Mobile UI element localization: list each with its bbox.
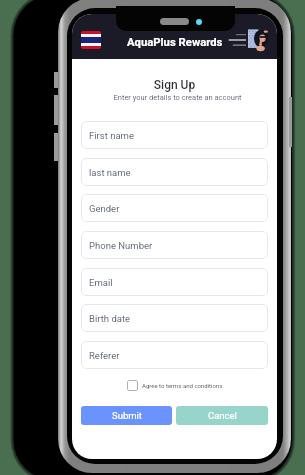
button[interactable]: Agree to terms and conditions <box>127 380 223 391</box>
staticText: Agree to terms and conditions <box>142 382 223 389</box>
button[interactable]: Change language <box>81 31 101 49</box>
staticText: Birth date <box>89 313 131 324</box>
staticText: Enter your details to create an account <box>75 93 277 102</box>
button[interactable]: First name <box>81 121 268 149</box>
button[interactable]: Submit <box>81 406 172 425</box>
staticText: Submit <box>112 410 142 421</box>
button[interactable]: Email <box>81 268 268 296</box>
button[interactable]: Phone Number <box>81 231 268 259</box>
staticText: AquaPlus Rewards <box>127 36 223 49</box>
button[interactable]: Menu <box>228 33 246 46</box>
staticText: Phone Number <box>89 240 153 251</box>
staticText: Gender <box>89 203 120 214</box>
staticText: last name <box>89 167 131 178</box>
staticText: Sign Up <box>72 78 277 92</box>
staticText: Referer <box>89 350 120 361</box>
button[interactable]: Gender <box>81 194 268 222</box>
button[interactable]: Cancel <box>176 406 268 425</box>
button[interactable]: Profile <box>248 29 268 50</box>
button[interactable]: last name <box>81 158 268 186</box>
staticText: Email <box>89 277 113 288</box>
staticText: First name <box>89 130 134 141</box>
staticText: Cancel <box>208 410 237 421</box>
button[interactable]: Referer <box>81 341 268 369</box>
button[interactable]: Birth date <box>81 304 268 332</box>
